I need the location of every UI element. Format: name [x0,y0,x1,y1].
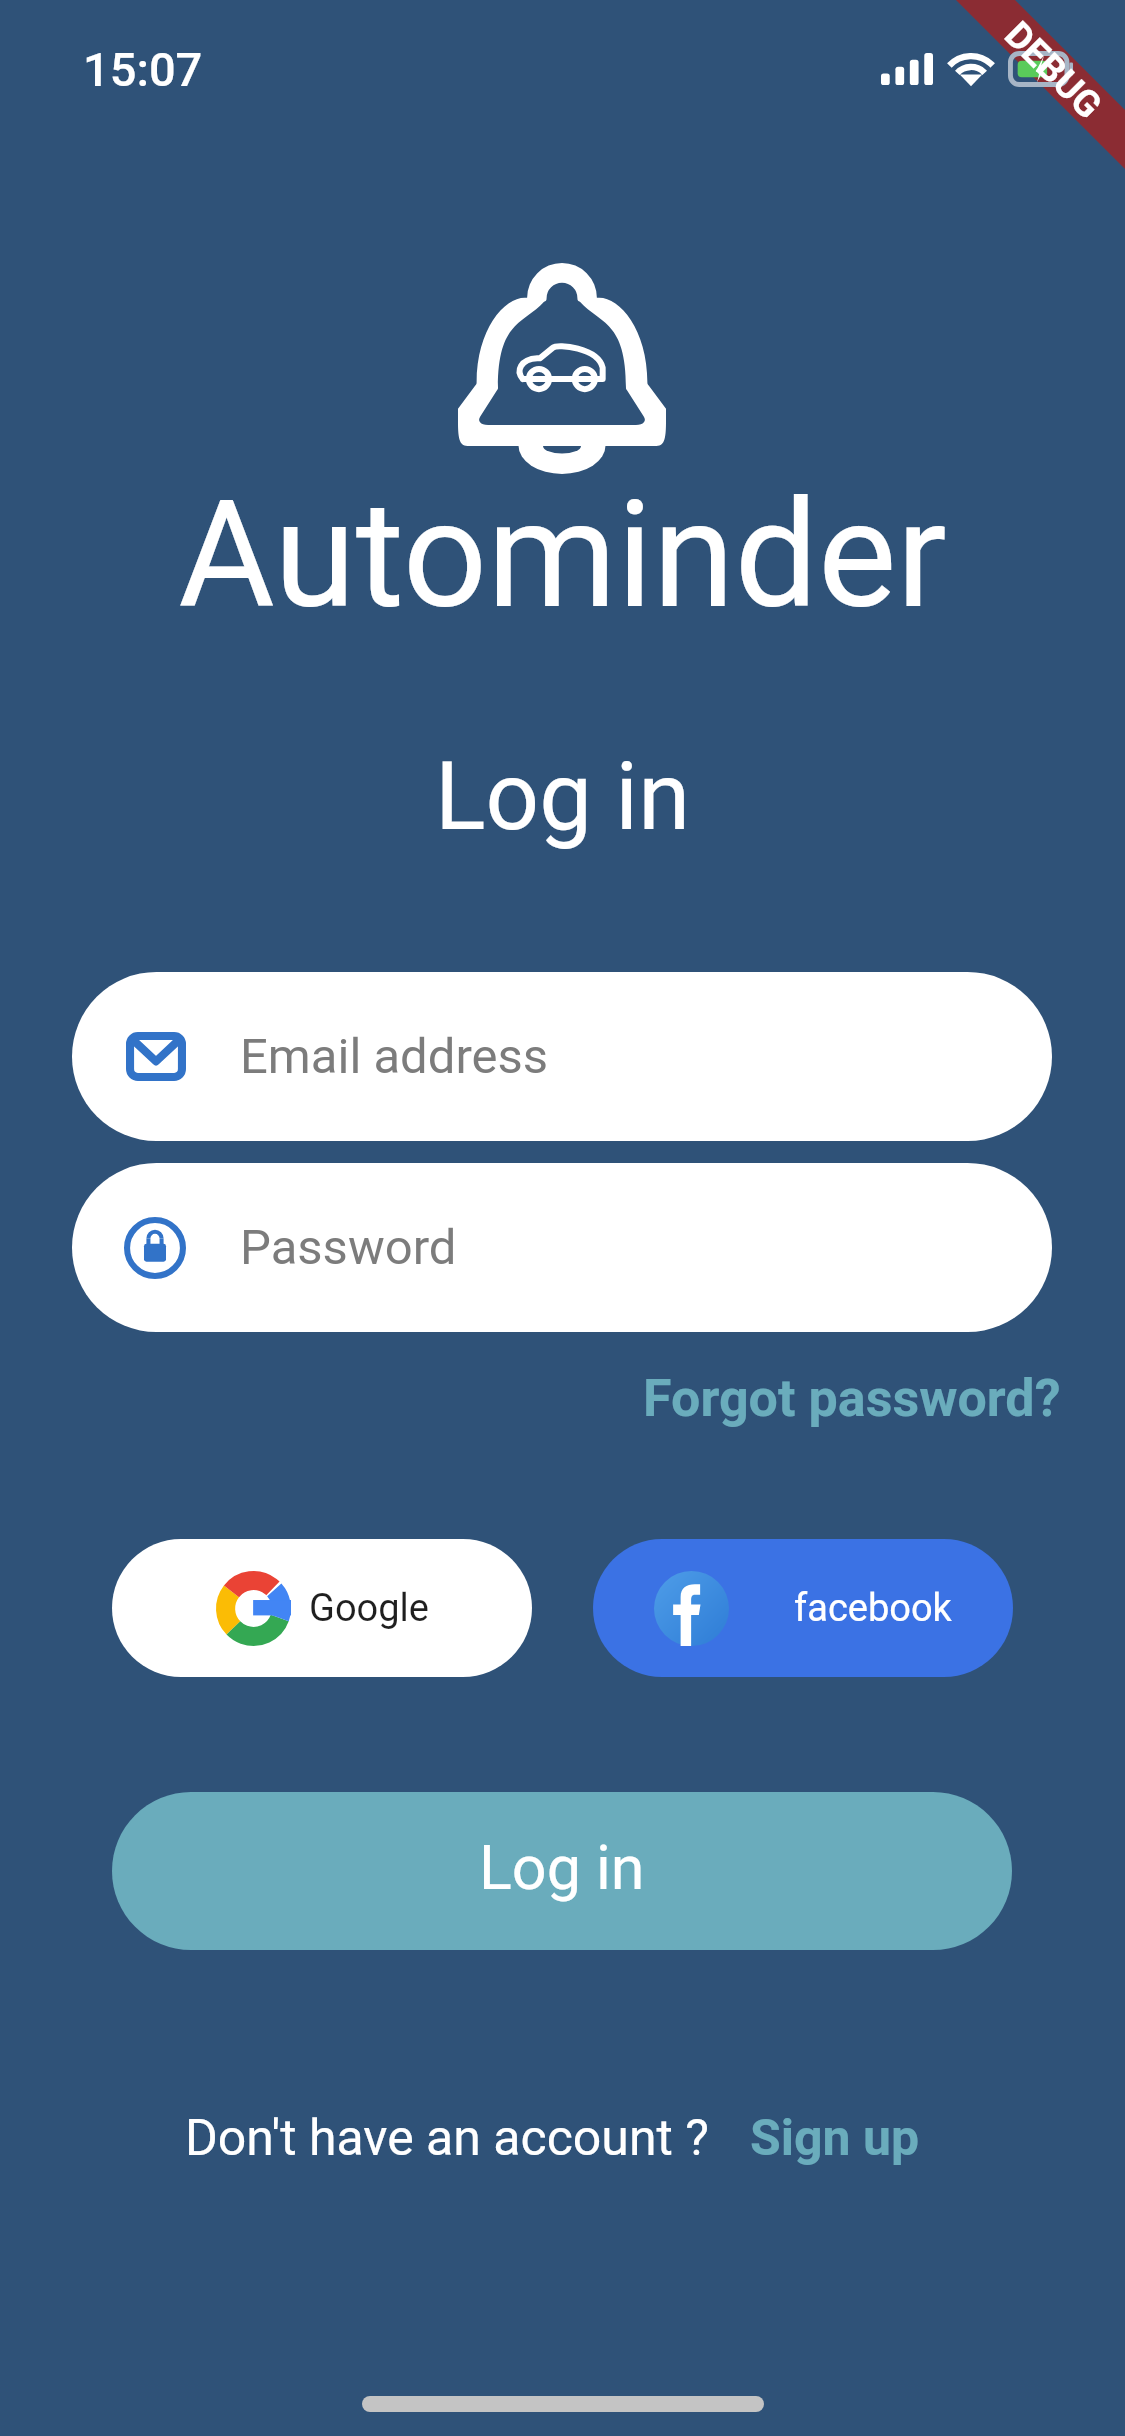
staticText: Autominder [0,469,1125,642]
button[interactable]: Forgot password? [643,1368,1061,1429]
staticText: Don't have an account ? [185,2109,709,2168]
button[interactable]: facebook [593,1539,1013,1677]
staticText: Password [240,1219,457,1276]
button[interactable]: Sign up [750,2109,920,2168]
button[interactable]: Log in [112,1792,1012,1950]
staticText: Log in [479,1832,645,1903]
staticText: Email address [240,1028,549,1085]
staticText: Google [309,1586,429,1631]
button[interactable]: Google [112,1539,532,1677]
staticText: Forgot password? [643,1368,1061,1429]
other: Debug banner [925,0,1125,200]
staticText: DEBUG [996,13,1111,128]
staticText: 15:07 [83,42,203,97]
staticText: Log in [0,742,1125,852]
button[interactable]: Password [72,1163,1052,1332]
staticText: Sign up [750,2109,920,2168]
staticText: facebook [794,1586,952,1631]
button[interactable]: Email address [72,972,1052,1141]
